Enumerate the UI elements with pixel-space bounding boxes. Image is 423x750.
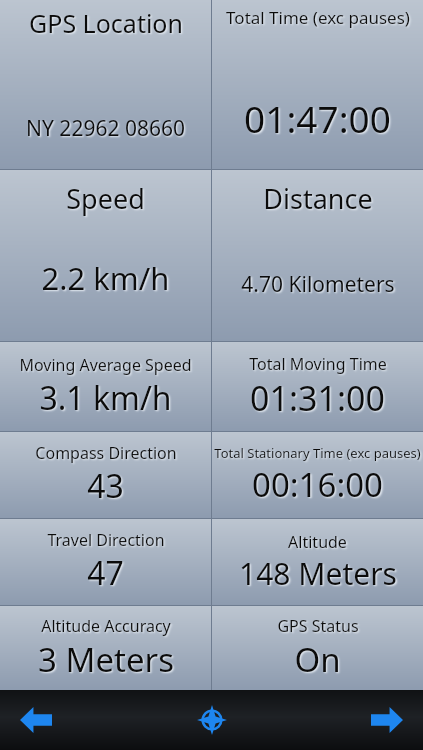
staticText: Speed (66, 180, 145, 217)
staticText: 47 (87, 551, 124, 595)
button[interactable]: Previous (10, 694, 62, 746)
button[interactable]: Altitude Accuracy (0, 606, 211, 690)
button[interactable]: Altitude (212, 519, 423, 605)
button[interactable]: GPS Status (212, 606, 423, 690)
staticText: Altitude Accuracy (41, 615, 171, 637)
staticText: NY 22962 08660 (26, 114, 185, 143)
staticText: 4.70 Kilometers (241, 270, 395, 299)
staticText: 3 Meters (38, 637, 174, 682)
staticText: 00:16:00 (252, 462, 383, 507)
button[interactable]: Speed (0, 170, 211, 341)
button[interactable]: Total Moving Time (212, 342, 423, 431)
staticText: 01:47:00 (244, 93, 391, 143)
staticText: GPS Location (29, 6, 183, 40)
staticText: 3.1 km/h (39, 376, 172, 420)
button[interactable]: GPS Location (0, 0, 211, 169)
staticText: Total Stationary Time (exc pauses) (214, 444, 421, 462)
staticText: On (294, 637, 341, 682)
staticText: Altitude (288, 531, 347, 553)
button[interactable]: Total Time (exc pauses) (212, 0, 423, 169)
button[interactable]: Total Stationary Time (exc pauses) (212, 432, 423, 518)
button[interactable]: Compass (186, 694, 238, 746)
staticText: Travel Direction (47, 529, 165, 551)
staticText: 148 Meters (239, 553, 397, 594)
staticText: GPS Status (277, 615, 359, 637)
staticText: 2.2 km/h (41, 257, 170, 299)
staticText: Moving Average Speed (19, 354, 192, 376)
staticText: 43 (87, 464, 124, 508)
button[interactable]: Travel Direction (0, 519, 211, 605)
staticText: Distance (263, 180, 373, 217)
staticText: Total Time (exc pauses) (226, 6, 410, 29)
button[interactable]: Compass Direction (0, 432, 211, 518)
button[interactable]: Moving Average Speed (0, 342, 211, 431)
staticText: 01:31:00 (250, 375, 385, 421)
button[interactable]: Next (361, 694, 413, 746)
staticText: Total Moving Time (249, 353, 387, 375)
staticText: Compass Direction (35, 442, 177, 464)
button[interactable]: Distance (212, 170, 423, 341)
